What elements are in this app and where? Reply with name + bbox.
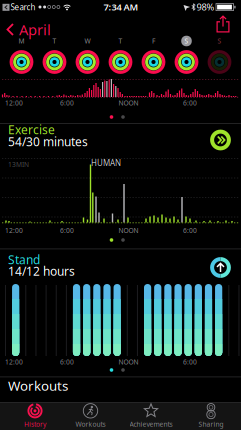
staticText: Exercise	[8, 121, 55, 137]
staticText: 12:00	[5, 226, 23, 235]
staticText: M	[18, 37, 24, 45]
button[interactable]: F	[139, 34, 167, 74]
staticText: S	[184, 37, 188, 45]
button[interactable]: T	[40, 34, 68, 74]
staticText: HUMAN	[91, 158, 121, 168]
staticText: 14/12	[8, 263, 40, 279]
button[interactable]: W	[73, 34, 101, 74]
staticText: 6:00	[183, 358, 197, 366]
button[interactable]: April	[5, 20, 53, 38]
staticText: NOON	[118, 358, 138, 366]
button[interactable]	[216, 15, 229, 33]
button[interactable]	[210, 257, 231, 278]
staticText: T	[52, 37, 56, 45]
staticText: NOON	[118, 226, 138, 235]
staticText: hours	[43, 263, 75, 279]
staticText: 6:00	[60, 358, 74, 366]
staticText: Workouts	[75, 420, 105, 429]
staticText: Achievements	[129, 420, 172, 429]
staticText: History	[24, 420, 46, 429]
button[interactable]: Workouts	[60, 402, 120, 429]
staticText: 7:34 AM	[103, 1, 138, 13]
staticText: 12:00	[5, 99, 23, 107]
staticText: Stand	[8, 251, 40, 267]
staticText: 12:00	[5, 358, 23, 366]
staticText: minutes	[43, 133, 88, 149]
staticText: S	[217, 37, 221, 45]
staticText: Search	[10, 2, 35, 12]
button[interactable]: Sharing	[181, 402, 241, 429]
staticText: Workouts	[8, 377, 68, 394]
button[interactable]: T	[106, 34, 134, 74]
staticText: 98%	[196, 1, 214, 13]
staticText: April	[19, 20, 51, 39]
staticText: NOON	[118, 99, 138, 107]
staticText: 6:00	[183, 99, 197, 107]
button[interactable]: History	[5, 402, 65, 429]
button[interactable]: S	[172, 34, 200, 74]
staticText: 6:00	[60, 226, 74, 235]
button[interactable]: M	[7, 34, 35, 74]
staticText: W	[84, 37, 90, 45]
staticText: 54/30	[8, 133, 40, 149]
staticText: Sharing	[198, 420, 223, 429]
button[interactable]: S	[205, 34, 233, 74]
staticText: T	[118, 37, 122, 45]
staticText: F	[152, 37, 155, 45]
button[interactable]	[210, 129, 231, 150]
staticText: 6:00	[183, 226, 197, 235]
staticText: 6:00	[60, 99, 74, 107]
button[interactable]: Achievements	[120, 402, 182, 429]
staticText: 13MIN	[8, 160, 29, 169]
